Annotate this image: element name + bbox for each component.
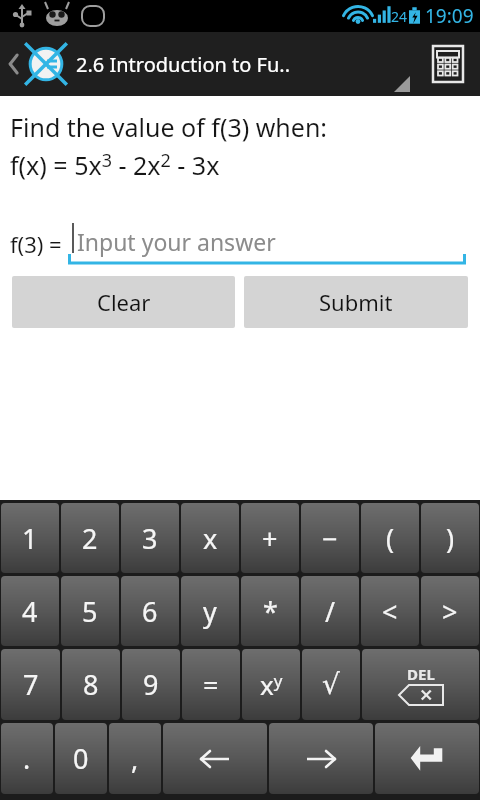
staticText: 6: [142, 593, 158, 630]
staticText: f(3) =: [10, 229, 68, 259]
button[interactable]: y: [181, 576, 239, 646]
button[interactable]: Delete: [362, 649, 479, 720]
staticText: Submit: [319, 287, 393, 317]
button[interactable]: Back: [4, 42, 70, 86]
staticText: DEL: [407, 664, 435, 684]
staticText: Clear: [97, 287, 151, 317]
staticText: 24: [391, 7, 408, 26]
button[interactable]: 0: [55, 723, 107, 794]
staticText: Find the value of f(3) when:: [10, 110, 328, 144]
button[interactable]: /: [301, 576, 359, 646]
button[interactable]: Submit: [244, 276, 468, 328]
button[interactable]: Input your answer: [68, 221, 466, 265]
button[interactable]: 5: [61, 576, 119, 646]
staticText: 7: [23, 666, 39, 703]
staticText: 3: [142, 520, 158, 557]
button[interactable]: −: [301, 503, 359, 573]
button[interactable]: .: [1, 723, 53, 794]
staticText: 8: [83, 666, 99, 703]
staticText: 2: [82, 520, 98, 557]
button[interactable]: 2: [61, 503, 119, 573]
button[interactable]: 1: [1, 503, 59, 573]
staticText: √: [322, 668, 340, 701]
button[interactable]: *: [241, 576, 299, 646]
staticText: Input your answer: [77, 226, 276, 257]
staticText: xy: [260, 667, 283, 702]
staticText: ): [446, 520, 455, 557]
button[interactable]: ): [421, 503, 479, 573]
staticText: 19:09: [425, 3, 474, 29]
button[interactable]: Move left: [163, 723, 267, 794]
staticText: (: [386, 520, 395, 557]
staticText: <: [382, 593, 398, 630]
staticText: .: [23, 740, 31, 777]
button[interactable]: (: [361, 503, 419, 573]
staticText: ,: [131, 740, 139, 777]
other: Back: [6, 47, 24, 81]
staticText: f(x) = 5x3 - 2x2 - 3x: [10, 148, 220, 183]
button[interactable]: 3: [121, 503, 179, 573]
button[interactable]: =: [182, 649, 240, 720]
button[interactable]: 2.6 Introduction to Fu..: [76, 32, 416, 96]
staticText: −: [322, 520, 338, 557]
staticText: /: [325, 593, 336, 630]
staticText: >: [442, 593, 458, 630]
staticText: 4: [22, 593, 38, 630]
button[interactable]: 6: [121, 576, 179, 646]
staticText: =: [203, 666, 219, 703]
button[interactable]: Move right: [269, 723, 373, 794]
staticText: *: [263, 593, 278, 630]
button[interactable]: <: [361, 576, 419, 646]
staticText: 1: [22, 520, 38, 557]
button[interactable]: 8: [62, 649, 120, 720]
staticText: x: [203, 520, 218, 557]
button[interactable]: Clear: [12, 276, 235, 328]
button[interactable]: Square root: [302, 649, 360, 720]
button[interactable]: Calculator: [416, 32, 480, 96]
button[interactable]: 4: [1, 576, 59, 646]
staticText: 5: [82, 593, 98, 630]
button[interactable]: Power: [242, 649, 300, 720]
button[interactable]: x: [181, 503, 239, 573]
button[interactable]: Enter: [375, 723, 479, 794]
button[interactable]: ,: [109, 723, 161, 794]
button[interactable]: 9: [122, 649, 180, 720]
staticText: 0: [73, 740, 89, 777]
button[interactable]: +: [241, 503, 299, 573]
staticText: 9: [143, 666, 159, 703]
button[interactable]: 7: [1, 649, 60, 720]
button[interactable]: >: [421, 576, 479, 646]
staticText: 2.6 Introduction to Fu..: [76, 51, 291, 78]
staticText: +: [262, 520, 278, 557]
staticText: y: [203, 593, 217, 630]
